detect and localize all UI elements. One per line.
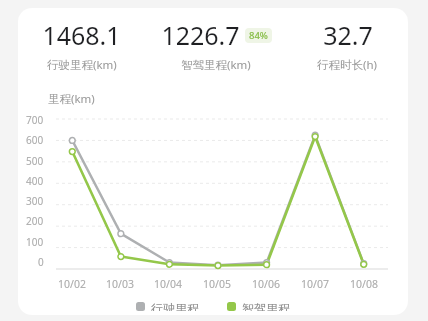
staticText: 10/05: [203, 277, 231, 291]
staticText: 1468.1: [42, 18, 121, 52]
staticText: 0: [38, 255, 44, 269]
staticText: 10/08: [350, 277, 378, 291]
staticText: 84%: [249, 29, 268, 42]
staticText: 智驾里程: [242, 301, 290, 311]
button[interactable]: 1468.1: [18, 16, 145, 75]
button[interactable]: 行驶里程: [132, 297, 203, 315]
staticText: 10/03: [106, 277, 134, 291]
button[interactable]: 32.7: [287, 16, 408, 75]
staticText: 200: [26, 214, 44, 228]
staticText: 智驾里程(km): [181, 57, 251, 73]
staticText: 10/07: [301, 277, 329, 291]
staticText: 行驶里程(km): [47, 57, 117, 73]
staticText: 700: [26, 113, 44, 127]
staticText: 10/04: [154, 277, 182, 291]
staticText: 100: [26, 235, 44, 249]
staticText: 1226.7: [161, 18, 240, 52]
staticText: 10/06: [252, 277, 280, 291]
staticText: 500: [26, 154, 44, 168]
button[interactable]: 智驾里程: [223, 297, 294, 315]
staticText: 行驶里程: [151, 301, 199, 311]
staticText: 600: [26, 133, 44, 147]
button[interactable]: 1226.7: [145, 16, 287, 75]
staticText: 32.7: [323, 18, 373, 52]
staticText: 10/02: [58, 277, 86, 291]
staticText: 里程(km): [48, 91, 95, 107]
staticText: 行程时长(h): [317, 57, 378, 73]
staticText: 400: [26, 174, 44, 188]
staticText: 300: [26, 194, 44, 208]
